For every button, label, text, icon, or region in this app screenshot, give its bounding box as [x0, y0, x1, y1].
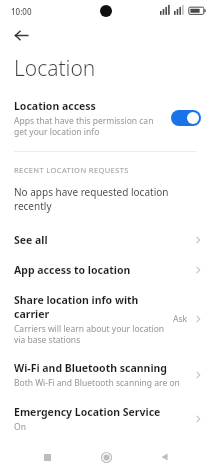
staticText: 10:00 — [11, 6, 32, 17]
staticText: No apps have requested location recently — [14, 185, 203, 213]
staticText: On — [14, 421, 26, 433]
button[interactable]: Google Location Accuracy — [0, 441, 211, 470]
button[interactable]: Location access toggle — [171, 110, 201, 126]
staticText: Google Location Accuracy — [14, 449, 141, 462]
button[interactable]: Emergency Location Service — [0, 397, 211, 441]
button[interactable]: See all — [0, 225, 211, 255]
staticText: Emergency Location Service — [14, 405, 161, 419]
button[interactable]: Back — [8, 22, 34, 48]
staticText: Location access — [14, 99, 96, 113]
staticText: Both Wi-Fi and Bluetooth scanning are on — [14, 377, 180, 389]
button[interactable]: Share location info with carrier — [0, 285, 211, 353]
button[interactable]: Location access — [0, 93, 211, 141]
button[interactable]: Recent apps — [34, 444, 60, 470]
staticText: Wi-Fi and Bluetooth scanning — [14, 361, 167, 375]
staticText: Carriers will learn about your location … — [14, 323, 173, 345]
button[interactable]: App access to location — [0, 255, 211, 285]
button[interactable]: Home — [93, 444, 119, 470]
staticText: Share location info with carrier — [14, 293, 173, 321]
staticText: App access to location — [14, 263, 131, 277]
staticText: RECENT LOCATION REQUESTS — [14, 165, 129, 175]
staticText: Ask — [173, 313, 188, 325]
button[interactable]: Wi-Fi and Bluetooth scanning — [0, 353, 211, 397]
button[interactable]: Back — [152, 444, 178, 470]
staticText: Apps that have this permission can get y… — [14, 115, 163, 137]
staticText: See all — [14, 233, 48, 247]
staticText: Location — [14, 54, 96, 83]
